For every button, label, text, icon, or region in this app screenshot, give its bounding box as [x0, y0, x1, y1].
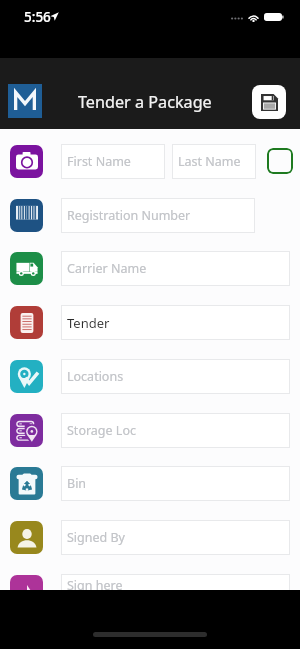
staticText: Sign here	[67, 577, 123, 594]
button[interactable]: Tender details	[10, 306, 43, 339]
staticText: First Name	[67, 153, 131, 170]
button[interactable]: Locations	[10, 360, 43, 393]
button[interactable]: Bin	[10, 467, 43, 500]
staticText: Carrier Name	[67, 260, 147, 277]
button[interactable]: Camera	[10, 145, 43, 178]
staticText: Last Name	[178, 153, 241, 170]
button[interactable]: Carrier Name	[61, 251, 290, 286]
staticText: Storage Loc	[67, 422, 136, 439]
button[interactable]: Select	[267, 148, 293, 174]
button[interactable]: First Name	[61, 144, 165, 179]
button[interactable]: Sign here	[61, 574, 290, 634]
button[interactable]: Storage Loc	[61, 413, 290, 448]
button[interactable]: Save	[252, 85, 286, 119]
button[interactable]: Tender	[61, 305, 290, 340]
button[interactable]: Home	[8, 84, 42, 118]
staticText: Registration Number	[67, 207, 191, 224]
button[interactable]: Storage location	[10, 414, 43, 447]
staticText: 5:56	[24, 8, 51, 26]
button[interactable]: Signed By	[61, 520, 290, 555]
button[interactable]: Sign here	[10, 575, 43, 608]
button[interactable]: Scan barcode	[10, 199, 43, 232]
staticText: Bin	[67, 475, 87, 492]
button[interactable]: Locations	[61, 359, 290, 394]
staticText: Locations	[67, 368, 124, 385]
staticText: Signed By	[67, 529, 125, 546]
button[interactable]: Carrier	[10, 252, 43, 285]
button[interactable]: Last Name	[172, 144, 256, 179]
staticText: Tender	[67, 314, 110, 332]
button[interactable]: Bin	[61, 466, 290, 501]
button[interactable]: Registration Number	[61, 198, 255, 233]
staticText: Tender a Package	[78, 91, 212, 113]
button[interactable]: Signed by	[10, 521, 43, 554]
